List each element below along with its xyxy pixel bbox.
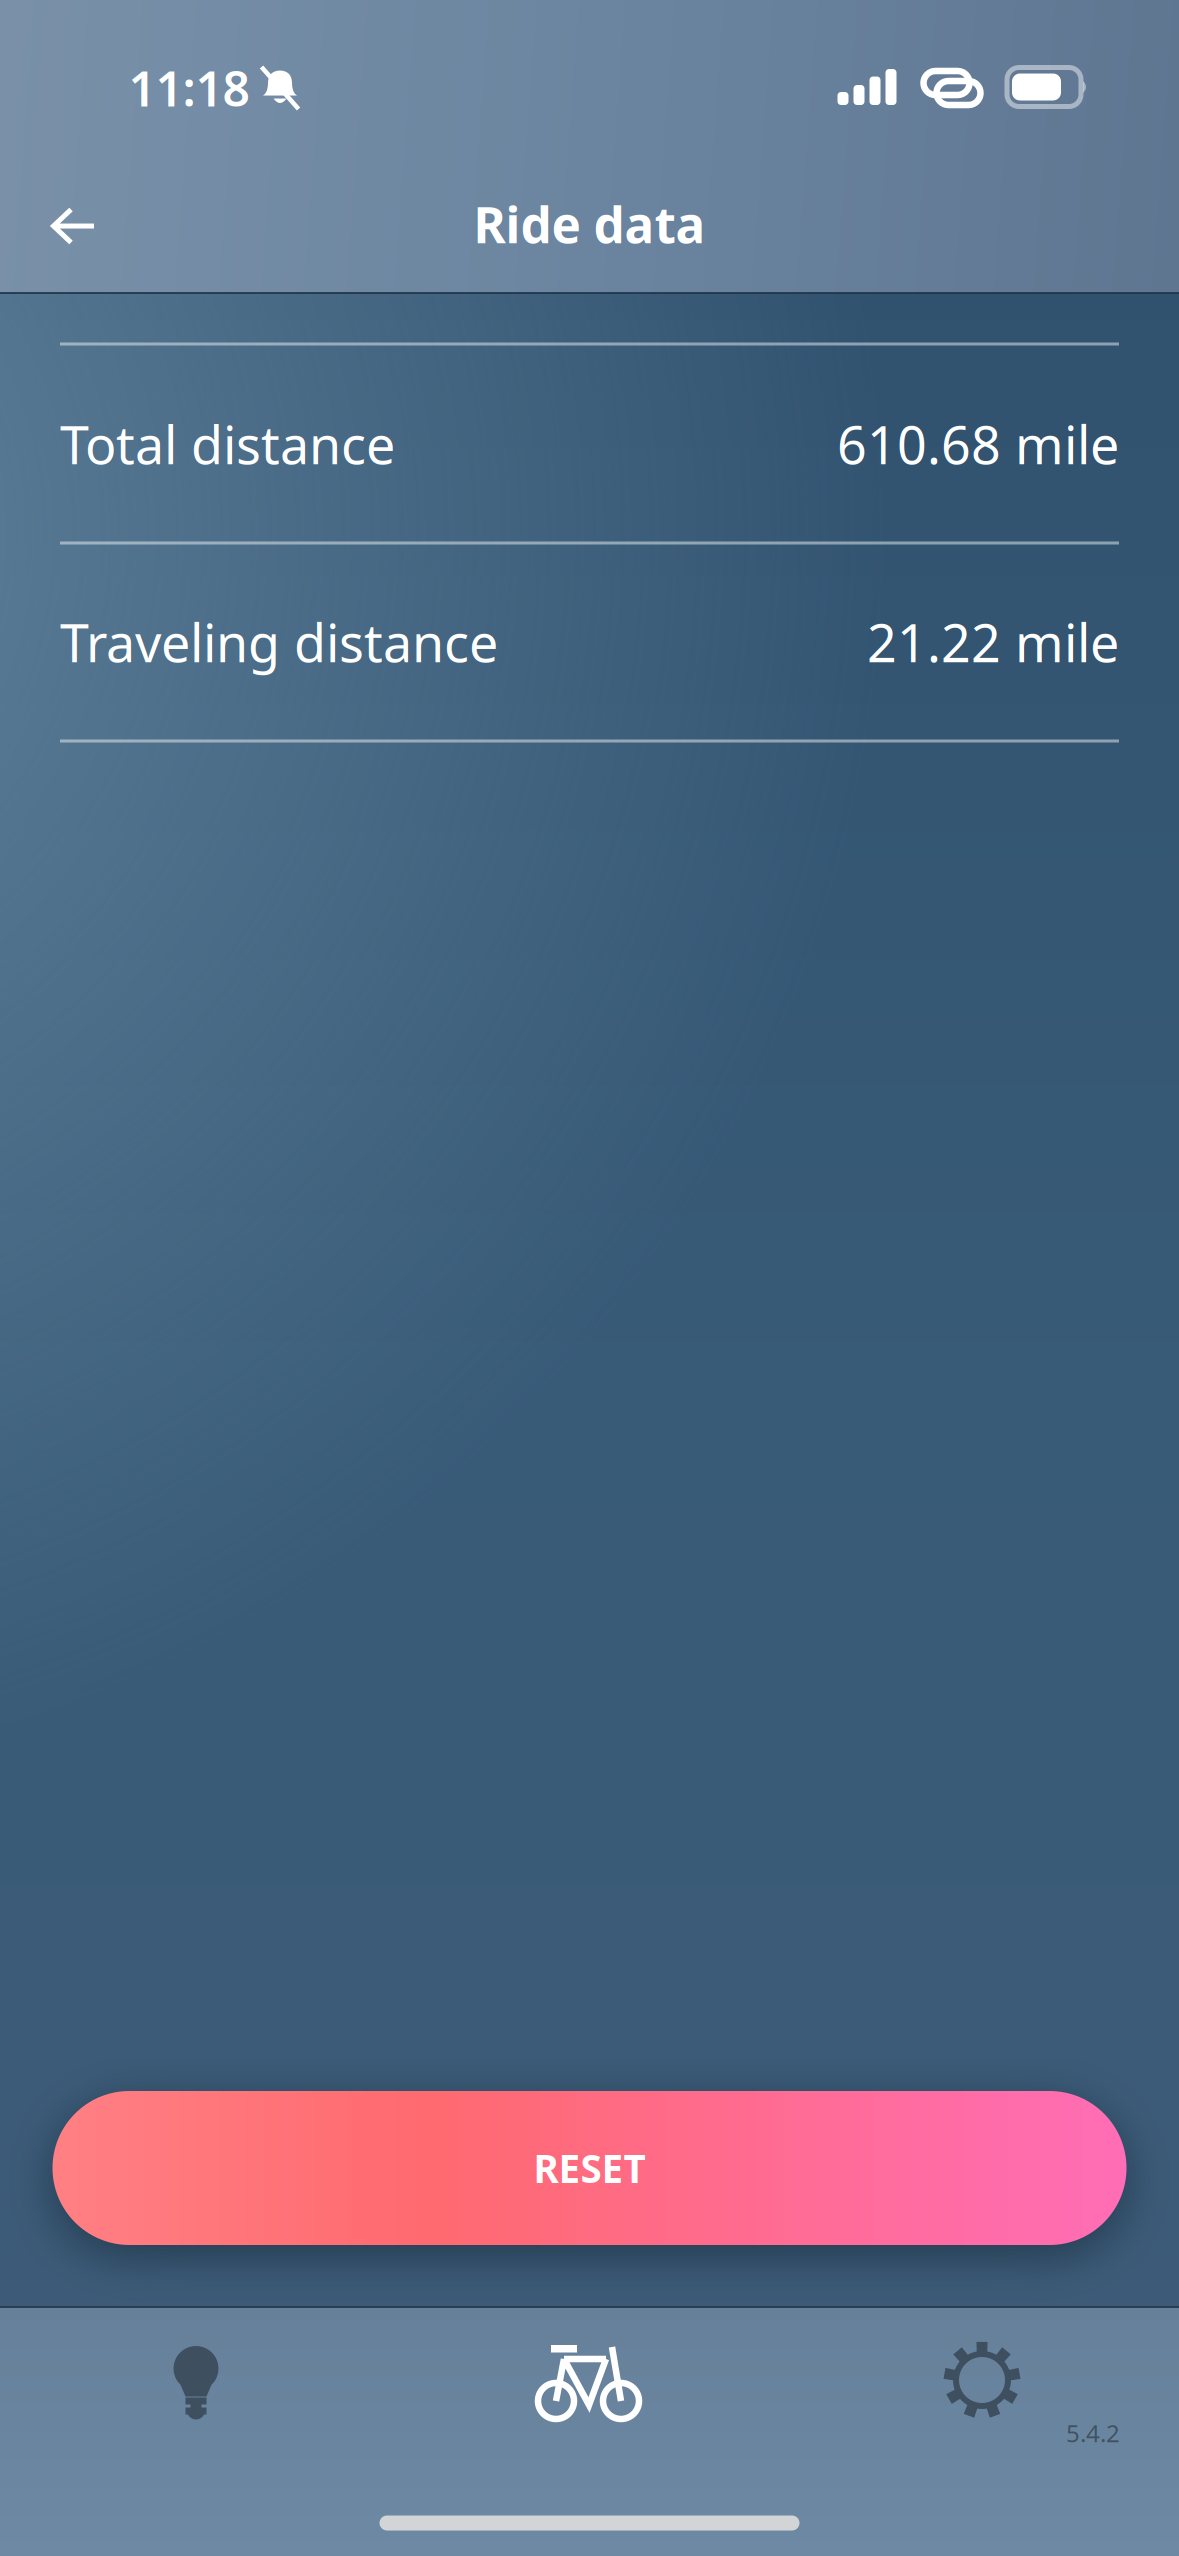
button[interactable]: Light <box>0 2323 392 2443</box>
staticText: Total distance <box>60 409 395 479</box>
button[interactable]: Back <box>15 174 131 278</box>
button[interactable]: Ride <box>392 2324 785 2444</box>
staticText: Ride data <box>473 191 705 257</box>
button[interactable]: RESET <box>52 2091 1126 2245</box>
button[interactable]: Settings <box>785 2320 1178 2440</box>
staticText: Traveling distance <box>60 607 498 677</box>
staticText: 21.22 mile <box>867 607 1119 677</box>
staticText: 610.68 mile <box>837 409 1119 479</box>
staticText: 11:18 <box>128 56 249 120</box>
staticText: 5.4.2 <box>1066 2417 1120 2449</box>
staticText: RESET <box>533 2142 645 2194</box>
